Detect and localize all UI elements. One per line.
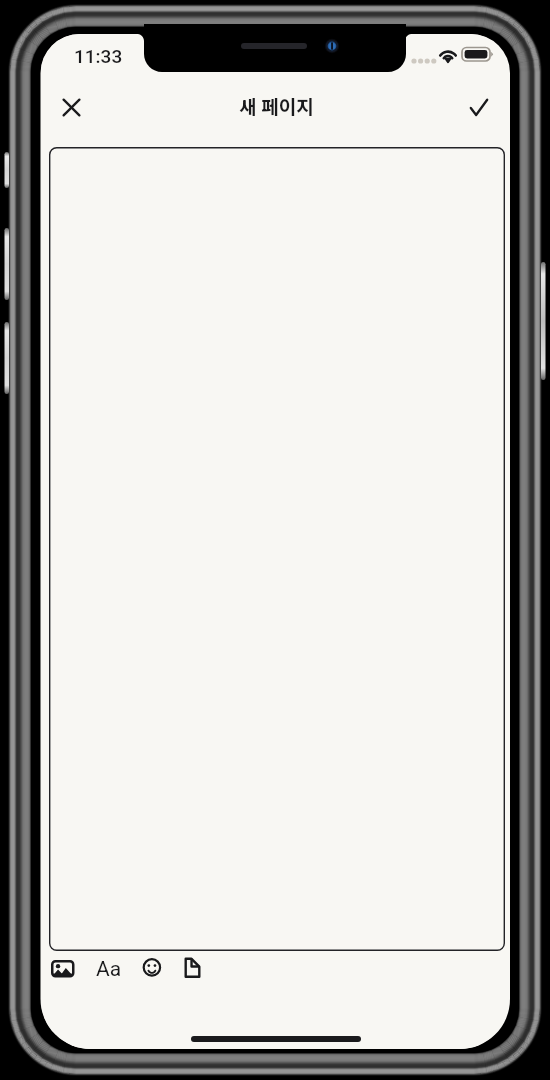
staticText: 11:33 (74, 45, 123, 67)
button[interactable]: Emoji (132, 952, 172, 986)
staticText: 새 페이지 (239, 92, 314, 120)
button[interactable]: Insert image (43, 952, 83, 986)
button[interactable]: Close (49, 85, 94, 130)
button[interactable]: Text style (89, 952, 129, 986)
button[interactable]: Done (456, 85, 501, 130)
staticText: Aa (96, 957, 122, 982)
button[interactable] (49, 147, 505, 951)
button[interactable]: Attach file (174, 952, 214, 986)
